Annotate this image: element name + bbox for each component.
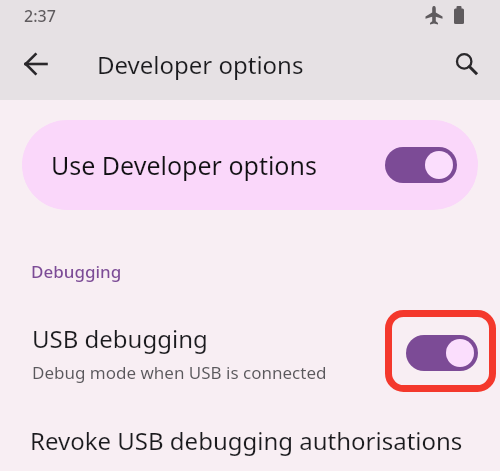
button[interactable]: USB debugging — [0, 310, 500, 390]
button[interactable]: Revoke USB debugging authorisations — [0, 410, 500, 471]
button[interactable]: Use Developer options — [22, 120, 478, 210]
staticText: 2:37 — [24, 5, 56, 27]
button[interactable] — [446, 46, 486, 82]
staticText: Developer options — [97, 48, 304, 81]
staticText: Use Developer options — [51, 148, 317, 182]
button[interactable] — [12, 50, 60, 78]
staticText: Revoke USB debugging authorisations — [30, 424, 463, 457]
staticText: USB debugging — [32, 322, 208, 355]
staticText: Debugging — [31, 260, 122, 283]
staticText: Debug mode when USB is connected — [32, 361, 327, 384]
